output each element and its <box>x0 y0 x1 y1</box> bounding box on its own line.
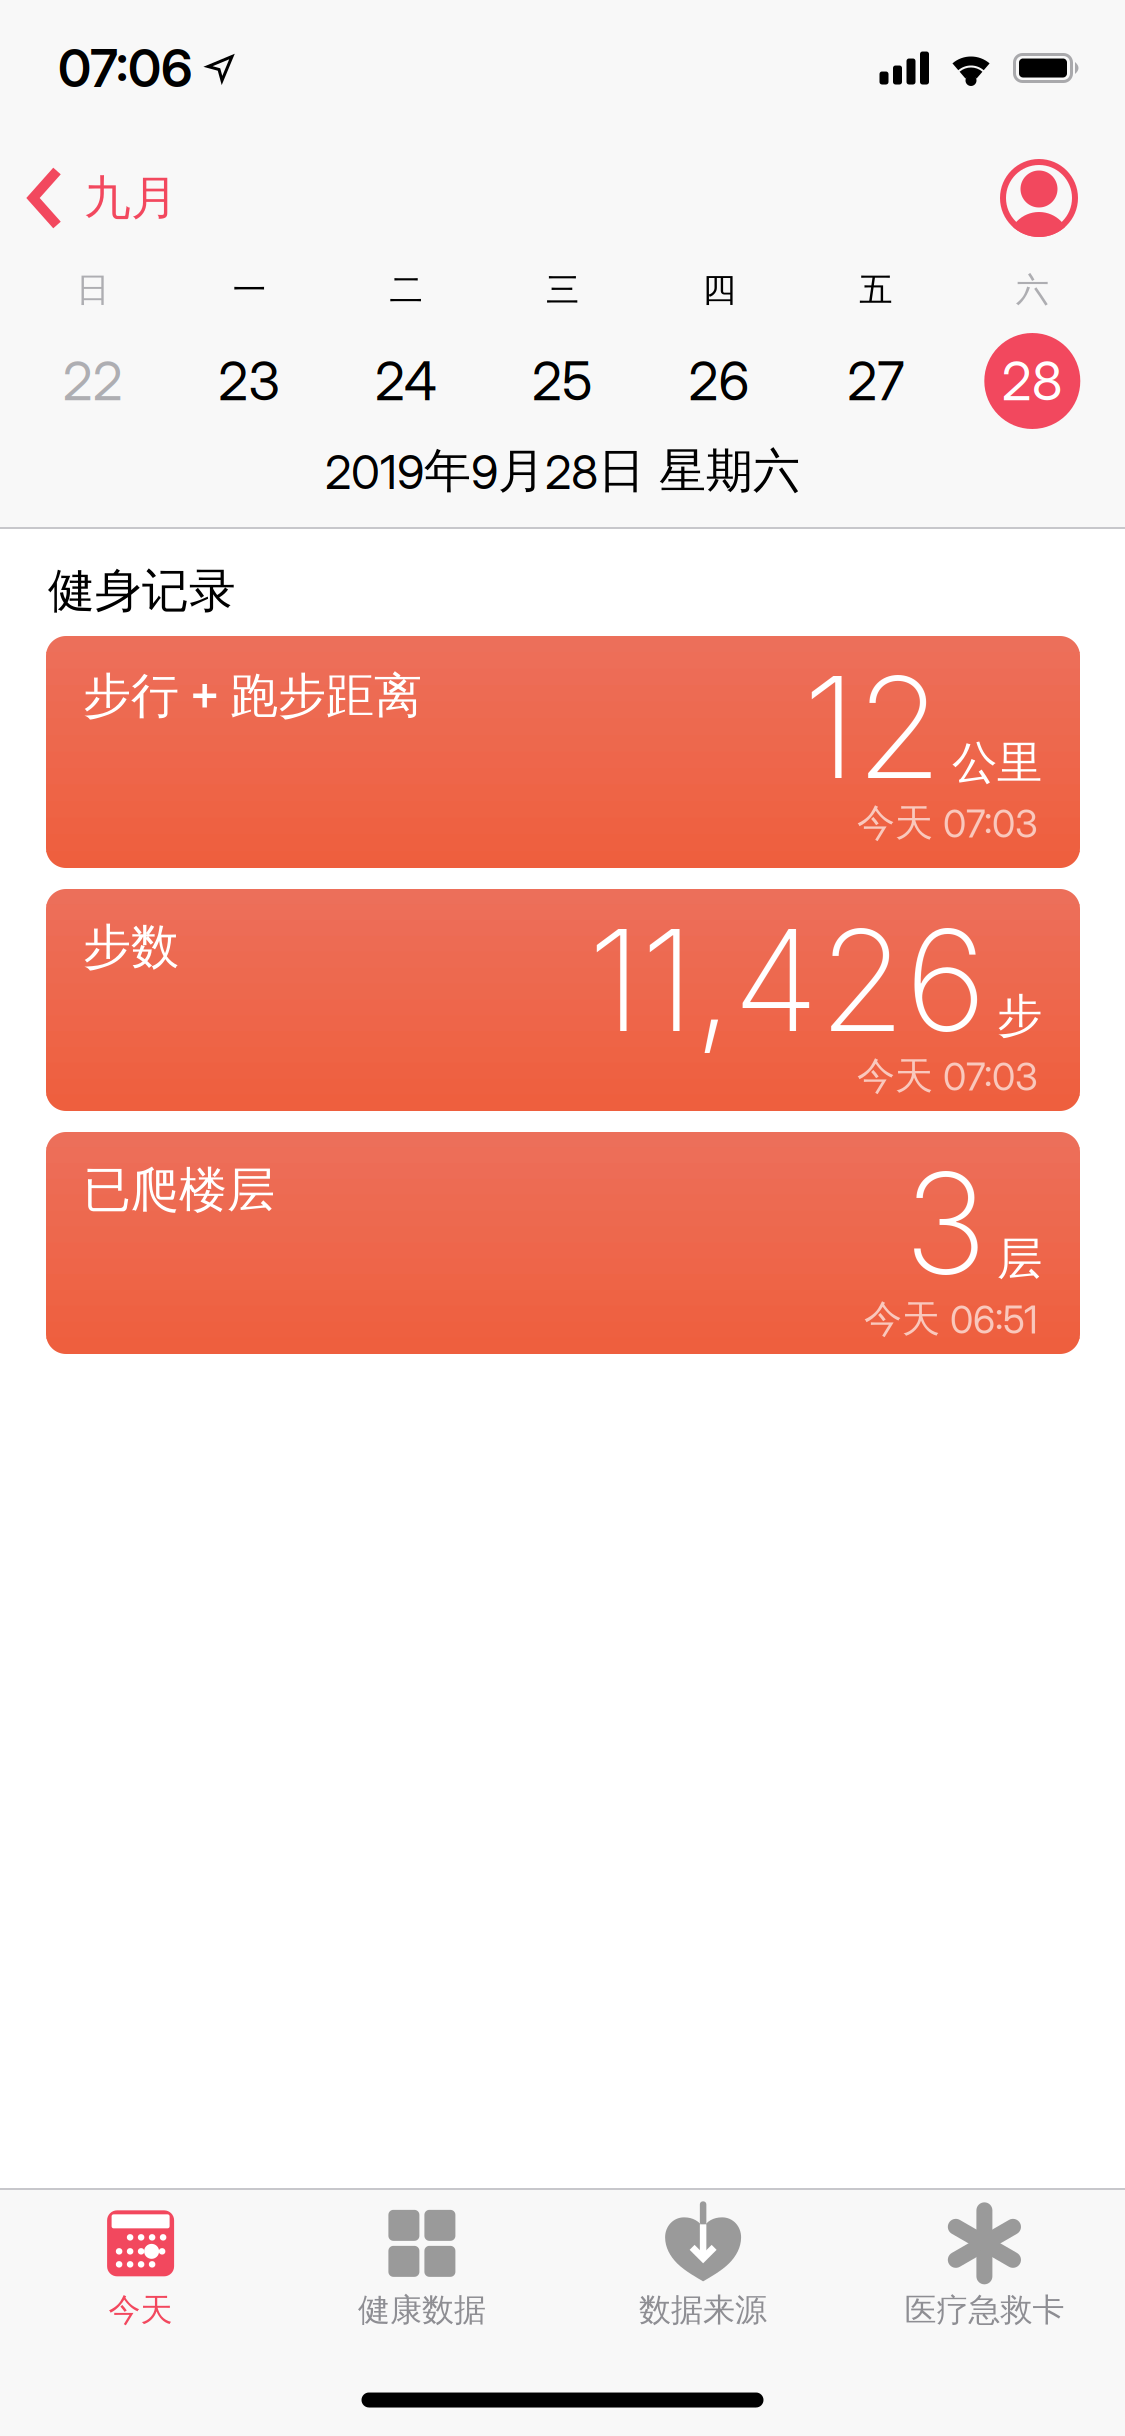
staticText: 25 <box>532 349 593 413</box>
button[interactable]: 医疗急救卡 <box>904 2208 1064 2330</box>
staticText: 27 <box>847 349 904 413</box>
staticText: 九月 <box>84 169 178 227</box>
staticText: 07:06 <box>58 36 193 99</box>
staticText: 五 <box>859 269 892 310</box>
button[interactable]: 二 <box>357 269 454 429</box>
staticText: 今天 <box>109 2290 173 2330</box>
button[interactable] <box>1000 159 1078 237</box>
staticText: 公里 <box>952 735 1042 791</box>
staticText: 2019年9月28日 星期六 <box>325 441 800 501</box>
staticText: 四 <box>703 269 736 310</box>
staticText: 健身记录 <box>48 562 236 620</box>
button[interactable]: 步数 <box>46 889 1080 1111</box>
staticText: 三 <box>546 269 579 310</box>
button[interactable]: 三 <box>514 269 611 429</box>
staticText: 26 <box>689 349 750 413</box>
staticText: 日 <box>76 269 109 310</box>
button[interactable]: 六 <box>984 269 1081 429</box>
staticText: 22 <box>63 349 123 413</box>
staticText: 24 <box>375 349 437 413</box>
button[interactable]: 步行 + 跑步距离 <box>46 636 1080 868</box>
button[interactable]: 日 <box>44 269 141 429</box>
button[interactable]: 四 <box>671 269 768 429</box>
staticText: 一 <box>233 269 266 310</box>
staticText: 今天 07:03 <box>857 1052 1038 1100</box>
button[interactable]: 五 <box>827 269 924 429</box>
staticText: 12 <box>803 642 942 812</box>
button[interactable]: 数据来源 <box>639 2208 767 2330</box>
staticText: 23 <box>218 349 280 413</box>
staticText: 数据来源 <box>639 2290 767 2330</box>
staticText: 层 <box>997 1231 1042 1287</box>
staticText: 六 <box>1016 269 1049 310</box>
button[interactable]: 九月 <box>28 166 178 230</box>
button[interactable]: 今天 <box>96 2208 186 2330</box>
button[interactable]: 已爬楼层 <box>46 1132 1080 1354</box>
staticText: 11,426 <box>588 895 987 1065</box>
staticText: 今天 06:51 <box>864 1295 1038 1343</box>
staticText: 3 <box>904 1138 987 1308</box>
staticText: 28 <box>1002 349 1063 413</box>
staticText: 步数 <box>83 917 179 976</box>
staticText: 步行 + 跑步距离 <box>83 662 422 726</box>
staticText: 健康数据 <box>358 2290 486 2330</box>
button[interactable]: 一 <box>201 269 298 429</box>
staticText: 步 <box>997 988 1042 1044</box>
button[interactable]: 健康数据 <box>358 2208 486 2330</box>
staticText: 医疗急救卡 <box>904 2290 1064 2330</box>
staticText: 已爬楼层 <box>83 1160 275 1219</box>
staticText: 今天 07:03 <box>857 799 1038 847</box>
staticText: 二 <box>389 269 422 310</box>
